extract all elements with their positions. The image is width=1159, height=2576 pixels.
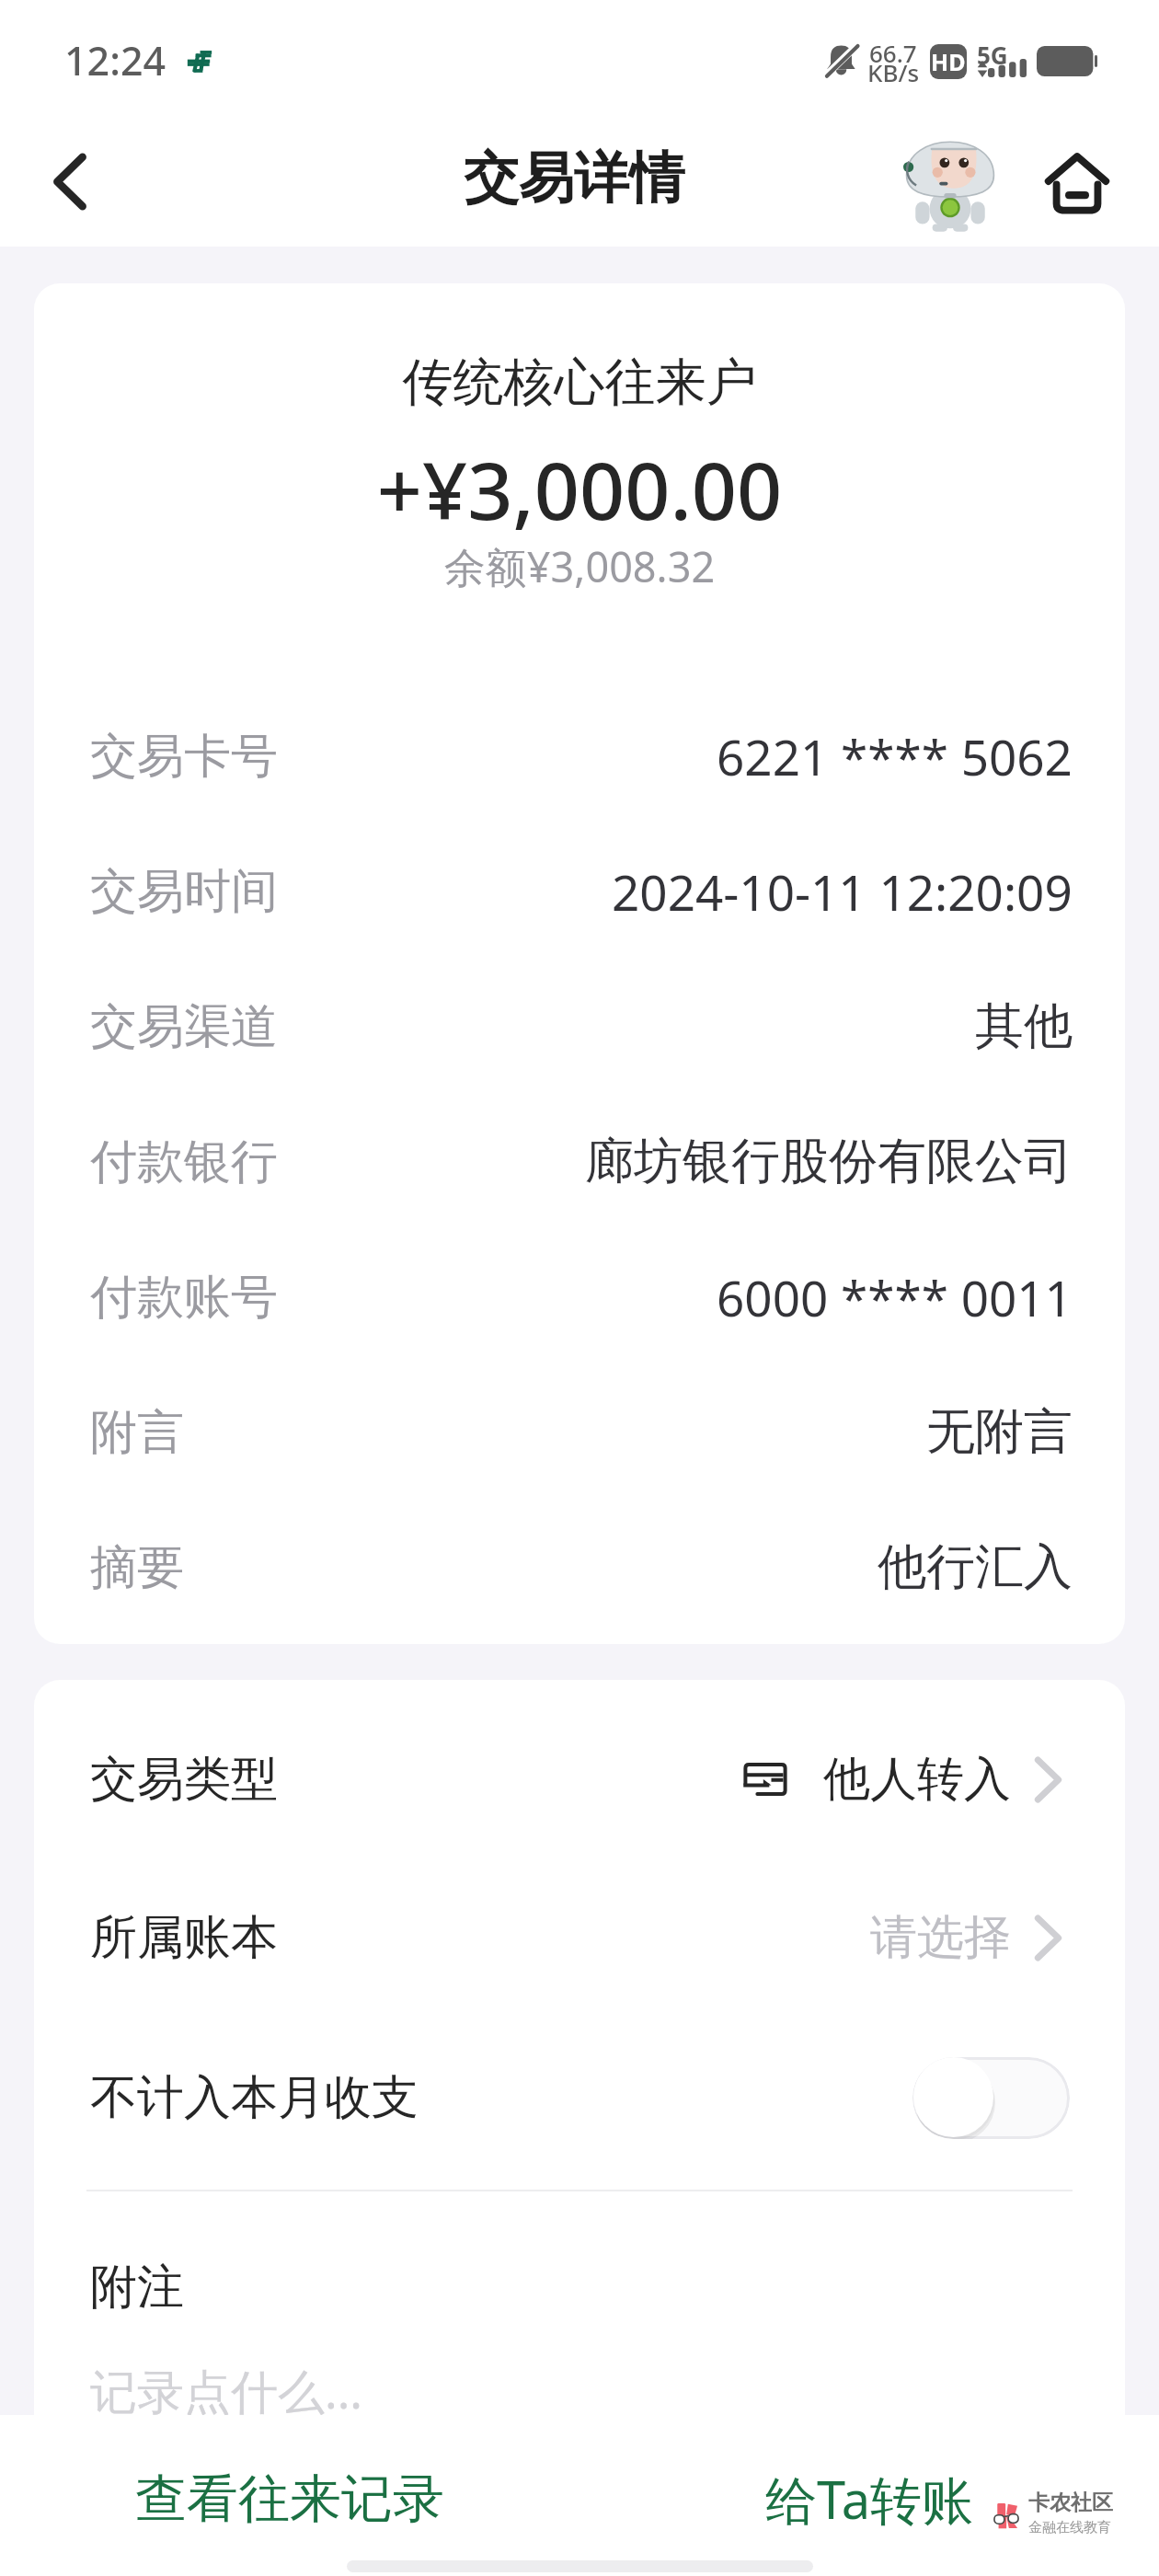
staticText: 他人转入 bbox=[823, 1750, 1011, 1809]
button[interactable]: 给Ta转账 bbox=[579, 2426, 1159, 2571]
staticText: 无附言 bbox=[926, 1401, 1073, 1463]
staticText: 传统核心往来户 bbox=[34, 351, 1125, 414]
staticText: 12:24 bbox=[64, 33, 166, 87]
staticText: 摘要 bbox=[90, 1538, 184, 1597]
button[interactable]: Smart assistant bbox=[894, 118, 1006, 239]
staticText: 6221 **** 5062 bbox=[717, 723, 1073, 789]
staticText: KB/s bbox=[867, 56, 920, 88]
button[interactable]: Exclude from this month's income and exp… bbox=[912, 2057, 1070, 2139]
staticText: 交易详情 bbox=[464, 144, 684, 213]
staticText: HD bbox=[931, 46, 966, 77]
staticText: 请选择 bbox=[870, 1908, 1011, 1967]
staticText: +¥3,000.00 bbox=[34, 435, 1125, 543]
button[interactable]: 不计入本月收支 bbox=[34, 2018, 1125, 2177]
staticText: 付款银行 bbox=[90, 1133, 278, 1191]
staticText: 廊坊银行股份有限公司 bbox=[585, 1131, 1073, 1192]
staticText: 不计入本月收支 bbox=[90, 2068, 419, 2127]
staticText: 2024-10-11 12:20:09 bbox=[612, 858, 1073, 925]
button[interactable]: Back bbox=[10, 113, 130, 249]
staticText: 交易渠道 bbox=[90, 997, 278, 1056]
button[interactable]: 所属账本 bbox=[34, 1858, 1125, 2017]
staticText: 交易类型 bbox=[90, 1750, 278, 1809]
staticText: 66.7 bbox=[869, 37, 917, 69]
staticText: 记录点什么... bbox=[90, 2358, 363, 2422]
staticText: 他行汇入 bbox=[878, 1536, 1073, 1598]
staticText: 6000 **** 0011 bbox=[717, 1264, 1073, 1330]
staticText: 附注 bbox=[90, 2258, 184, 2317]
staticText: 余额¥3,008.32 bbox=[34, 538, 1125, 594]
button[interactable]: Home bbox=[1035, 141, 1119, 225]
staticText: 附言 bbox=[90, 1403, 184, 1462]
staticText: 其他 bbox=[975, 995, 1073, 1057]
staticText: 给Ta转账 bbox=[765, 2464, 974, 2534]
staticText: 查看往来记录 bbox=[135, 2467, 444, 2532]
staticText: 所属账本 bbox=[90, 1908, 278, 1967]
button[interactable]: 查看往来记录 bbox=[0, 2426, 579, 2571]
staticText: 金融在线教育 bbox=[1028, 2519, 1111, 2536]
staticText: 付款账号 bbox=[90, 1268, 278, 1327]
staticText: 交易时间 bbox=[90, 862, 278, 921]
staticText: 交易卡号 bbox=[90, 727, 278, 786]
staticText: 5G bbox=[977, 39, 1008, 71]
staticText: 卡农社区 bbox=[1028, 2490, 1113, 2516]
button[interactable]: 交易类型 bbox=[34, 1700, 1125, 1858]
